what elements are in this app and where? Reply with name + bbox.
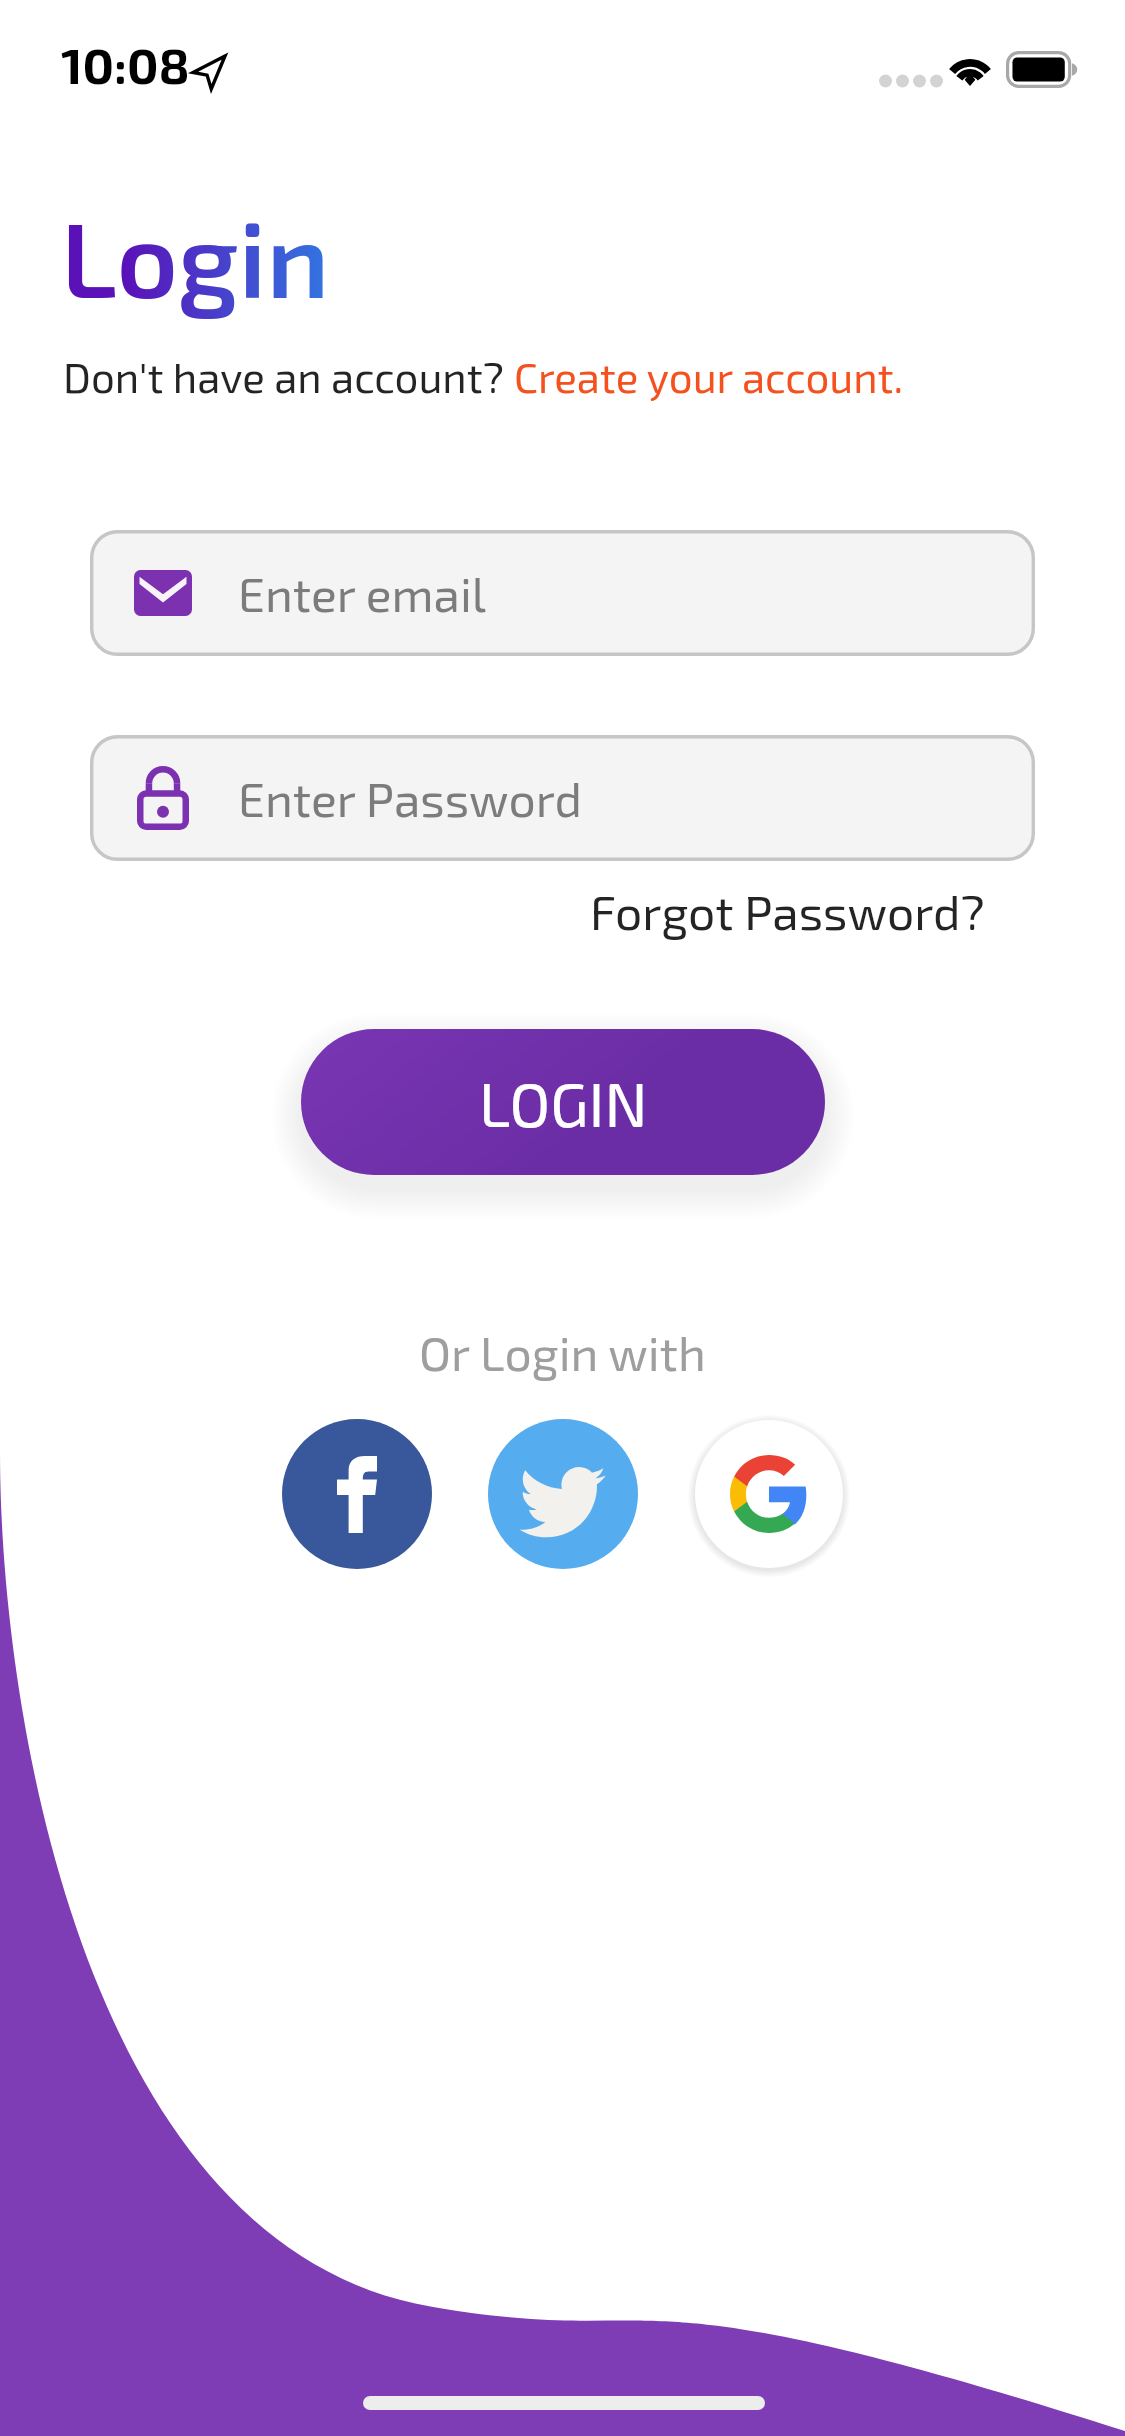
staticText: Enter Password <box>238 769 582 827</box>
staticText: Don't have an account? <box>63 351 514 401</box>
staticText: Enter email <box>238 564 487 622</box>
staticText: LOGIN <box>479 1066 648 1139</box>
staticText: Or Login with <box>419 1323 706 1381</box>
staticText: 10:08 <box>61 34 190 94</box>
button[interactable]: Login with Facebook <box>282 1419 432 1569</box>
button[interactable]: Enter email <box>90 530 1035 656</box>
button[interactable]: Login with Google <box>694 1419 844 1569</box>
button[interactable]: Enter Password <box>90 735 1035 861</box>
button[interactable]: Forgot Password? <box>578 872 997 950</box>
staticText: Login <box>61 192 330 319</box>
button[interactable]: LOGIN <box>301 1029 825 1175</box>
button[interactable]: Create your account. <box>514 351 904 401</box>
button[interactable]: Login with Twitter <box>488 1419 638 1569</box>
